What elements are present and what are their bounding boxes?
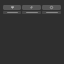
button[interactable]: Workout: [22, 5, 41, 10]
button[interactable]: Steps: [3, 11, 21, 14]
button[interactable]: Distance: [42, 11, 61, 14]
button[interactable]: Goal: [42, 5, 61, 10]
button[interactable]: Heart rate: [3, 5, 21, 10]
button[interactable]: Calories: [22, 11, 41, 14]
